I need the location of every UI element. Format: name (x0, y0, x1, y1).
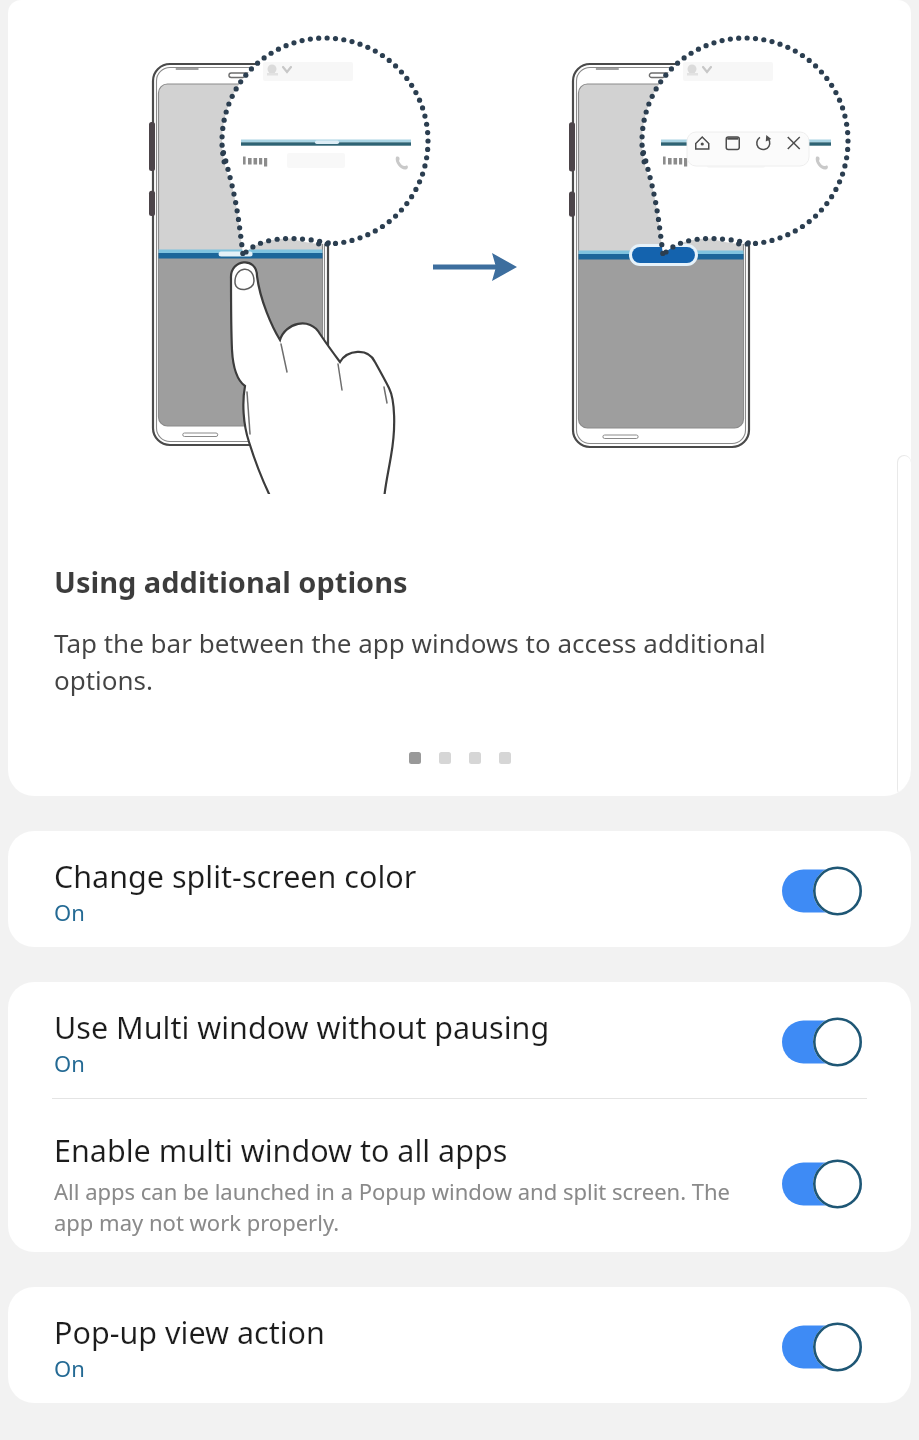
staticText: Change split-screen color (54, 855, 417, 897)
button[interactable]: Use Multi window without pausing (8, 982, 911, 1098)
staticText: On (54, 1048, 85, 1078)
button[interactable]: Toggle on (782, 1322, 862, 1372)
staticText: Tap the bar between the app windows to a… (54, 625, 784, 698)
staticText: Pop-up view action (54, 1311, 325, 1353)
staticText: Using additional options (54, 562, 408, 601)
staticText: On (54, 1353, 85, 1383)
button[interactable]: Change split-screen color (8, 831, 911, 947)
staticText: Use Multi window without pausing (54, 1006, 550, 1048)
button[interactable]: Toggle on (782, 866, 862, 916)
staticText: All apps can be launched in a Popup wind… (54, 1176, 766, 1238)
button[interactable]: Enable multi window to all apps (8, 1099, 911, 1252)
button[interactable]: Toggle on (782, 1159, 862, 1209)
button[interactable]: Toggle on (782, 1017, 862, 1067)
staticText: Enable multi window to all apps (54, 1129, 508, 1171)
button[interactable]: Page indicator (409, 752, 511, 764)
button[interactable]: Pop-up view action (8, 1287, 911, 1403)
staticText: On (54, 897, 85, 927)
